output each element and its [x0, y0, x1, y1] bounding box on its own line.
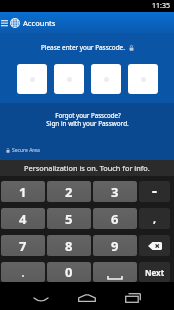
staticText: 7	[19, 237, 27, 255]
button[interactable]: 3	[93, 181, 137, 202]
button[interactable]: ,	[139, 208, 170, 229]
button[interactable]: 5	[47, 208, 91, 229]
button[interactable]: Personalization is on. Touch for info.	[0, 160, 174, 176]
staticText: 3	[111, 183, 119, 201]
button[interactable]	[54, 64, 84, 94]
button[interactable]: Next	[139, 262, 170, 282]
staticText: Sign in with your Password.	[46, 119, 129, 128]
other: Space	[108, 276, 122, 279]
button[interactable]	[139, 181, 170, 202]
button[interactable]: Forgot your Passcode?	[46, 111, 129, 128]
button[interactable]: Recents	[110, 282, 156, 310]
button[interactable]: 9	[93, 235, 137, 256]
button[interactable]: 1	[1, 181, 45, 202]
button[interactable]: Back	[18, 282, 64, 310]
staticText: Forgot your Passcode?	[55, 111, 121, 119]
button[interactable]: 0	[47, 262, 91, 282]
button[interactable]: 7	[1, 235, 45, 256]
staticText: Accounts	[23, 18, 56, 28]
button[interactable]: 4	[1, 208, 45, 229]
button[interactable]: Menu	[0, 12, 9, 33]
staticText: ,	[153, 211, 157, 226]
staticText: Secure Area	[12, 147, 40, 154]
staticText: Please enter your Passcode.	[41, 43, 125, 52]
staticText: 2	[65, 183, 73, 201]
staticText: 1	[19, 183, 27, 201]
button[interactable]: 8	[47, 235, 91, 256]
button[interactable]: Delete	[139, 235, 170, 256]
staticText: Next	[145, 267, 165, 278]
staticText: 5	[65, 210, 73, 228]
button[interactable]: Space	[93, 262, 137, 282]
staticText: 4	[19, 210, 27, 228]
button[interactable]	[17, 64, 47, 94]
button[interactable]	[128, 64, 158, 94]
staticText: 8	[65, 237, 73, 255]
button[interactable]: 6	[93, 208, 137, 229]
button[interactable]: 2	[47, 181, 91, 202]
staticText: 6	[111, 210, 119, 228]
button[interactable]: Home	[64, 282, 110, 310]
staticText: 9	[111, 237, 119, 255]
button[interactable]	[91, 64, 121, 94]
button[interactable]	[1, 262, 45, 282]
other: Delete	[148, 242, 162, 250]
staticText: 11:35	[152, 1, 170, 11]
staticText: 0	[65, 263, 73, 281]
staticText: Personalization is on. Touch for info.	[24, 163, 150, 173]
